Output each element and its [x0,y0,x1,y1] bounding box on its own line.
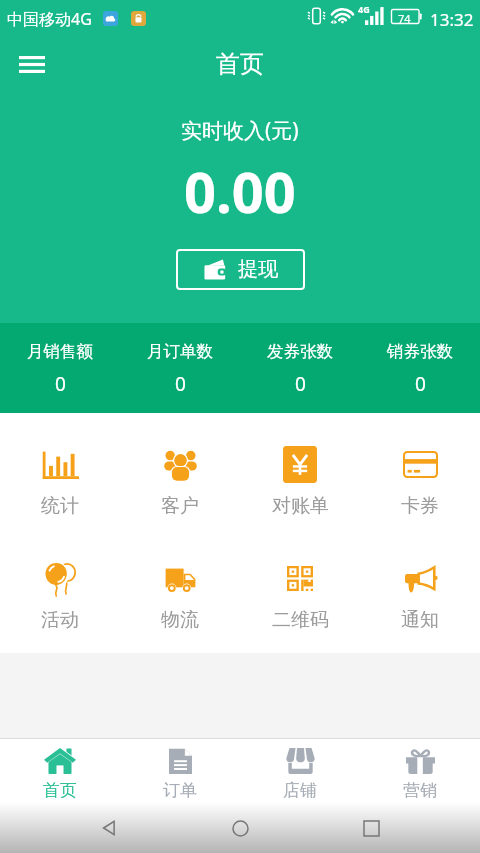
staticText: 二维码 [272,608,329,632]
staticText: 0 [175,371,186,397]
staticText: 销券张数 [387,341,453,362]
button[interactable]: 营销 [360,739,480,803]
staticText: 首页 [43,780,77,801]
button[interactable]: Menu [8,40,56,88]
button[interactable]: Home [218,806,262,850]
staticText: 4G [358,3,370,15]
staticText: 提现 [238,257,278,282]
staticText: 订单 [163,780,197,801]
staticText: 0 [415,371,426,397]
staticText: 0.00 [184,153,296,229]
button[interactable]: 物流 [120,533,240,647]
staticText: 0 [55,371,66,397]
staticText: 活动 [41,608,79,632]
button[interactable]: 统计 [0,419,120,533]
staticText: 营销 [403,780,437,801]
button[interactable]: 提现 [176,249,305,290]
button[interactable]: 月销售额 [0,323,120,413]
button[interactable]: 销券张数 [360,323,480,413]
staticText: 中国移动4G [7,8,92,30]
staticText: 对账单 [272,494,329,518]
button[interactable]: Back [87,806,131,850]
staticText: 74 [398,11,411,26]
button[interactable]: 订单 [120,739,240,803]
staticText: 物流 [161,608,199,632]
button[interactable]: Recents [349,806,393,850]
button[interactable]: 通知 [360,533,480,647]
staticText: 卡券 [401,494,439,518]
button[interactable]: 活动 [0,533,120,647]
staticText: 首页 [216,49,264,79]
button[interactable]: 客户 [120,419,240,533]
staticText: 月销售额 [27,341,93,362]
button[interactable]: 首页 [0,739,120,803]
staticText: 通知 [401,608,439,632]
button[interactable]: 店铺 [240,739,360,803]
staticText: 13:32 [430,8,474,31]
button[interactable]: 卡券 [360,419,480,533]
staticText: 0 [295,371,306,397]
button[interactable]: 月订单数 [120,323,240,413]
staticText: 统计 [41,494,79,518]
staticText: 店铺 [283,780,317,801]
button[interactable]: 二维码 [240,533,360,647]
staticText: 实时收入(元) [181,116,299,145]
staticText: 发券张数 [267,341,333,362]
staticText: 客户 [161,494,199,518]
button[interactable]: 对账单 [240,419,360,533]
button[interactable]: 发券张数 [240,323,360,413]
staticText: 月订单数 [147,341,213,362]
